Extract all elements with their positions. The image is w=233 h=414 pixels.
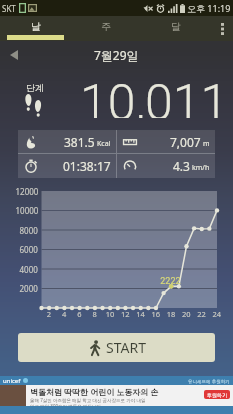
staticText: unicef [3, 377, 21, 385]
button[interactable]: Previous day [4, 45, 24, 65]
staticText: 381.5 [64, 134, 95, 150]
staticText: 유니세프에 후원하기 [188, 378, 230, 384]
staticText: 01:38:17 [63, 158, 111, 174]
button[interactable]: START [18, 333, 215, 362]
button[interactable]: 날 [0, 16, 71, 41]
staticText: START [106, 338, 146, 357]
staticText: 있고 매일 300개의 벽돌을 만듭니다. [30, 403, 103, 406]
staticText: 주 [101, 20, 111, 33]
button[interactable]: 달 [141, 16, 211, 41]
button[interactable]: More options [211, 16, 233, 41]
staticText: 4.3 [173, 158, 190, 174]
staticText: m [203, 139, 210, 149]
staticText: 벽돌처럼 딱딱한 어린이 노동자의 손 [30, 386, 159, 397]
button[interactable]: 주 [71, 16, 141, 41]
staticText: 날 [31, 20, 41, 33]
staticText: Kcal [97, 139, 111, 149]
staticText: 올해 7살인 아즈람은 매일 학교 대신 공사장으로 가야 내일 [30, 397, 146, 403]
staticText: 10,011 [80, 74, 229, 118]
staticText: SKT [2, 3, 16, 14]
staticText: 7,007 [170, 134, 201, 150]
staticText: 단계 [26, 82, 44, 93]
staticText: 후원하기 [207, 392, 227, 398]
staticText: 7월29일 [94, 47, 139, 63]
button[interactable]: 후원하기 [204, 390, 230, 399]
staticText: 오후 11:19 [187, 2, 231, 14]
staticText: km/h [192, 163, 210, 173]
staticText: 달 [171, 20, 181, 33]
